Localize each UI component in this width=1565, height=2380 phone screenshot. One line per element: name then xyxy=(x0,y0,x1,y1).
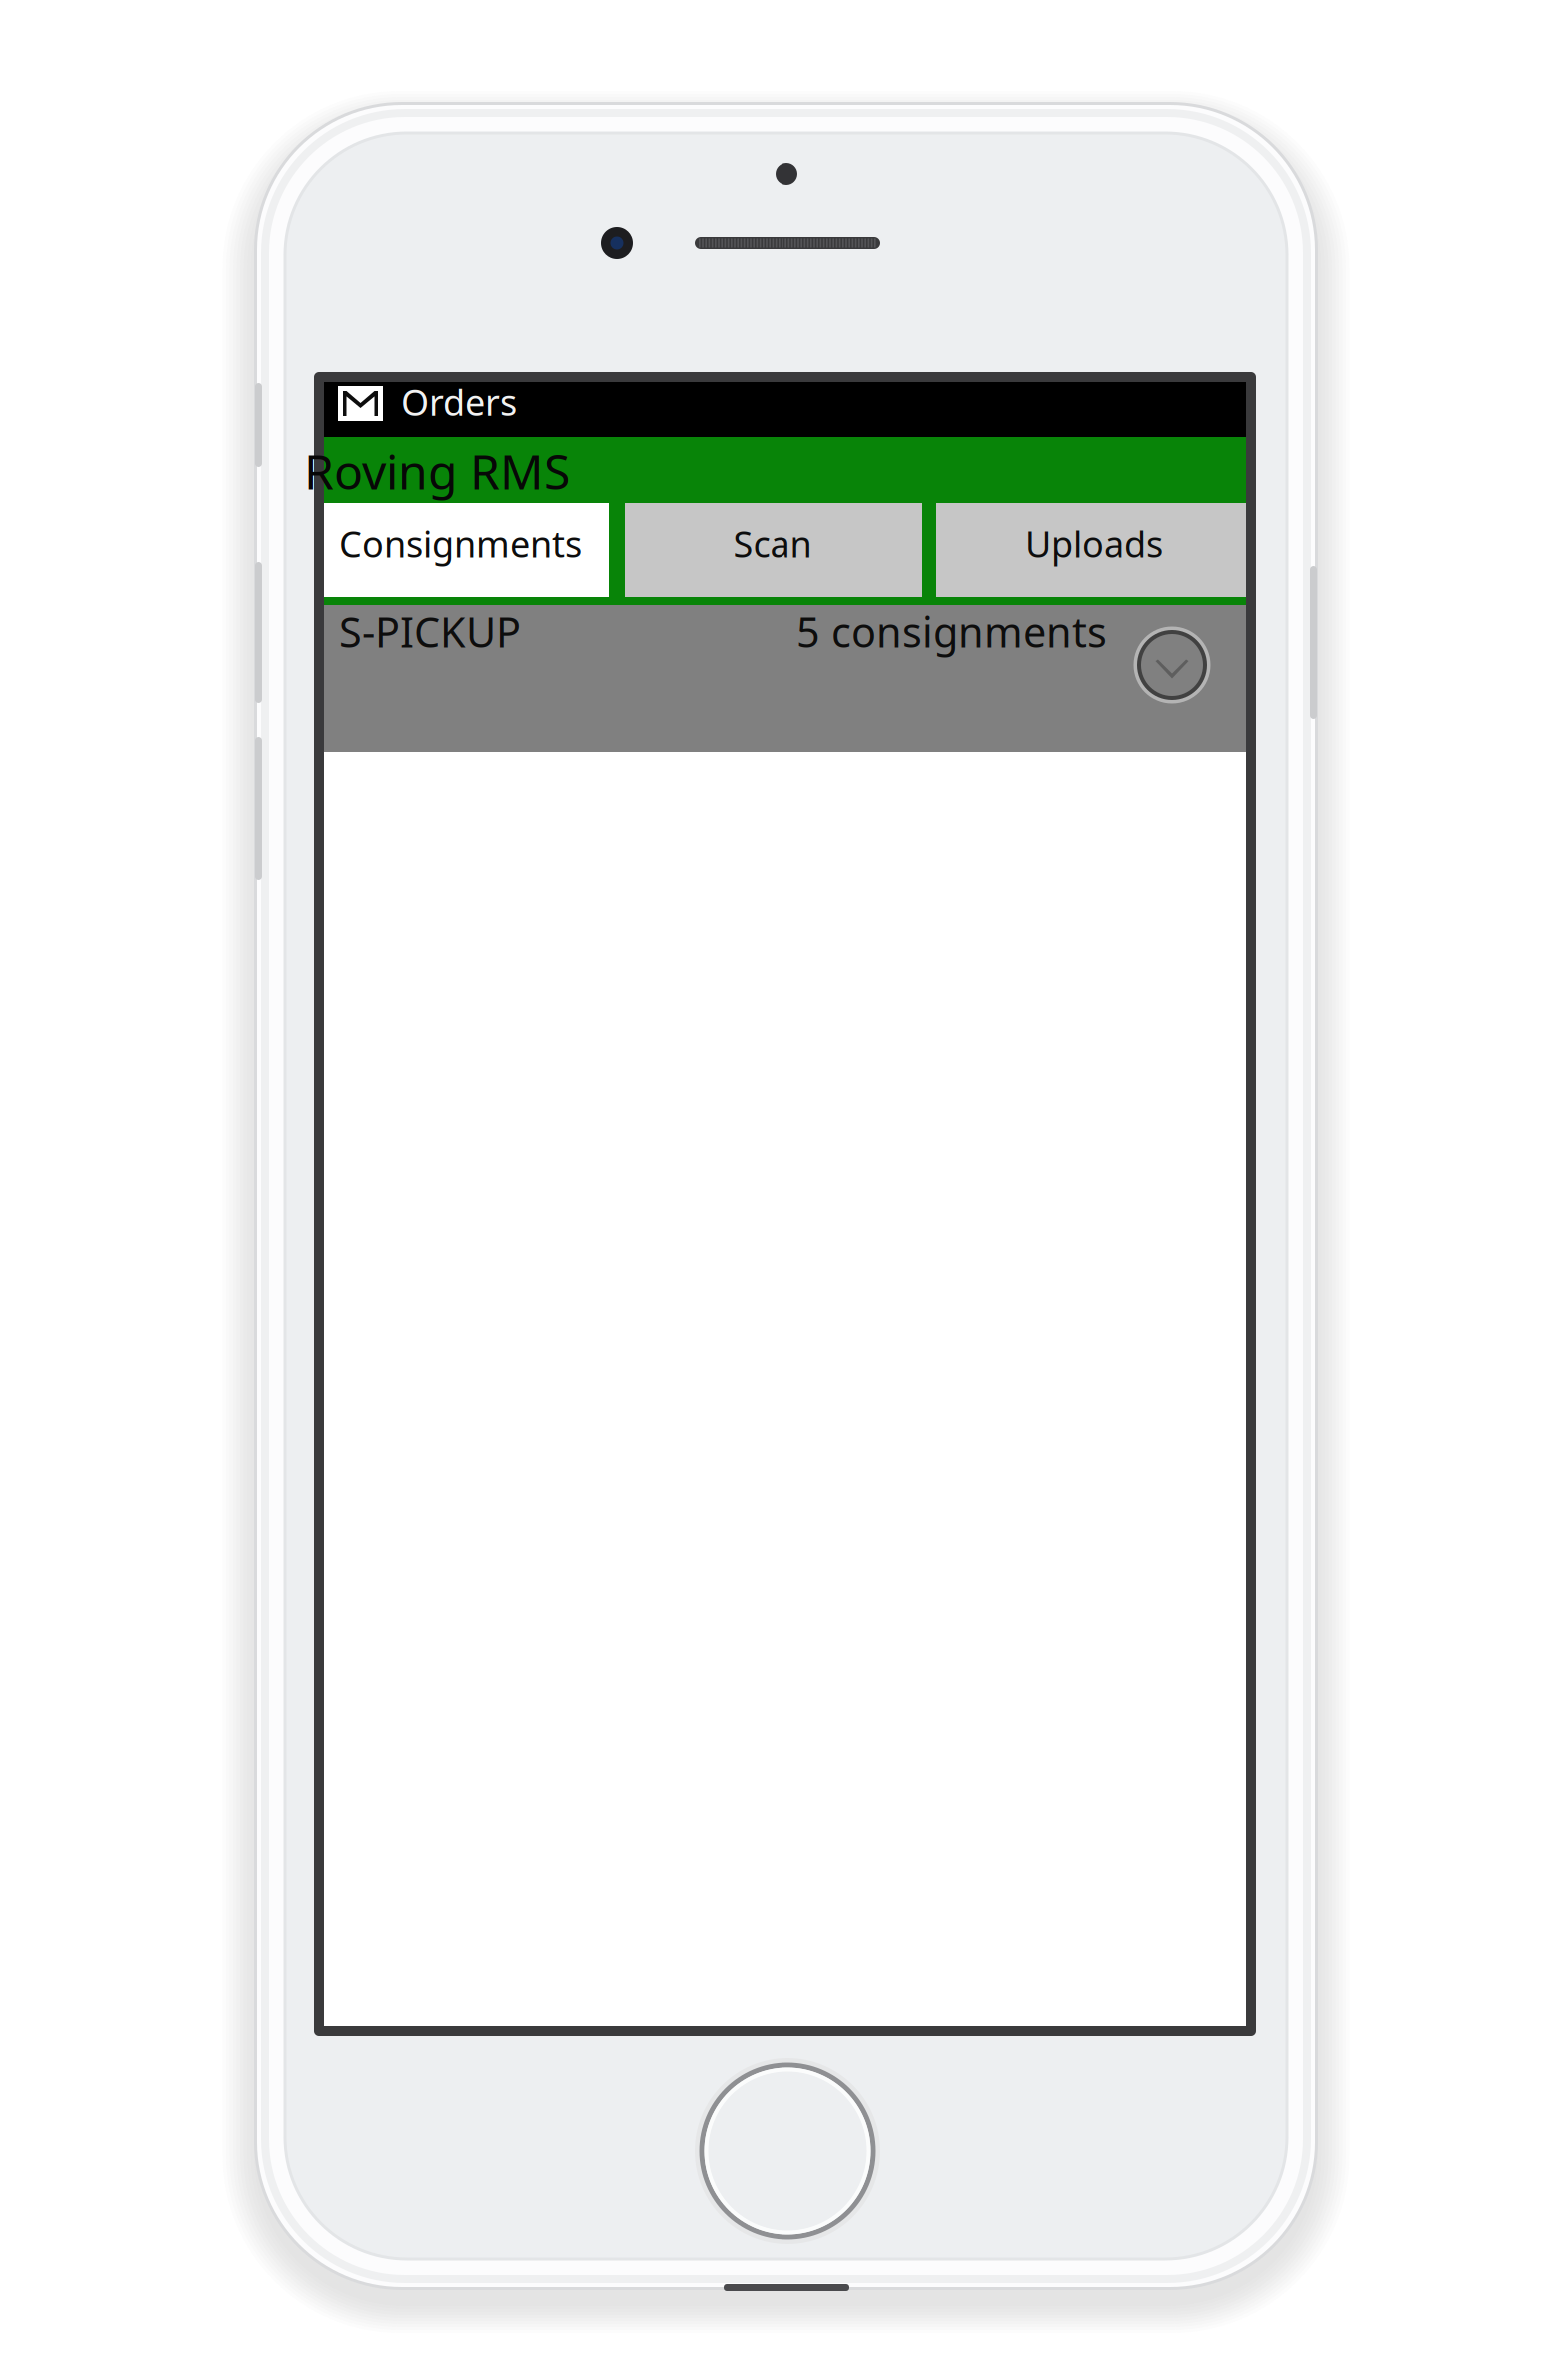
staticText: Roving RMS xyxy=(304,439,570,502)
button[interactable]: Expand S-PICKUP group xyxy=(1132,625,1212,705)
staticText: Orders xyxy=(401,378,517,425)
staticText: S-PICKUP xyxy=(339,604,521,659)
staticText: Uploads xyxy=(1025,519,1163,567)
staticText: 5 consignments xyxy=(796,604,1107,659)
button[interactable]: S-PICKUP xyxy=(324,605,1246,752)
staticText: Scan xyxy=(733,519,812,567)
staticText: Consignments xyxy=(339,519,582,567)
button[interactable]: Scan xyxy=(625,503,922,597)
button[interactable]: Consignments xyxy=(324,503,609,597)
button[interactable]: Uploads xyxy=(936,503,1246,597)
